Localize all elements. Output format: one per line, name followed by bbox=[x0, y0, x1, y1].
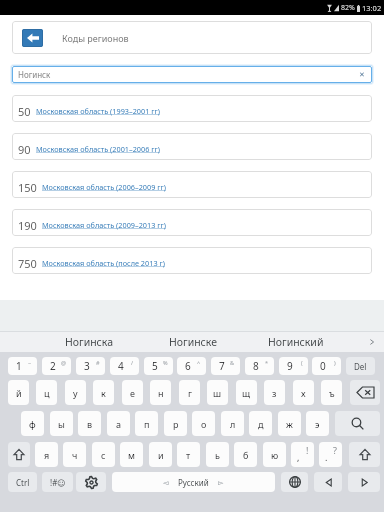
button[interactable]: Search bbox=[335, 411, 380, 436]
button[interactable]: 2 bbox=[42, 357, 71, 375]
button[interactable]: р bbox=[164, 411, 187, 436]
button[interactable]: Назад bbox=[22, 29, 43, 47]
button[interactable]: л bbox=[221, 411, 244, 436]
button[interactable]: в bbox=[78, 411, 101, 436]
button[interactable]: ъ bbox=[321, 380, 342, 405]
button[interactable]: Ногинске bbox=[141, 332, 245, 352]
staticText: б bbox=[243, 449, 249, 461]
button[interactable]: г bbox=[179, 380, 200, 405]
button[interactable]: 8 bbox=[245, 357, 274, 375]
staticText: , bbox=[297, 451, 300, 463]
staticText: ✕ bbox=[359, 71, 365, 79]
button[interactable]: Settings bbox=[76, 472, 106, 492]
button[interactable]: а bbox=[107, 411, 130, 436]
button[interactable]: 150 bbox=[12, 171, 372, 198]
button[interactable]: у bbox=[65, 380, 86, 405]
other: Settings bbox=[85, 476, 98, 489]
staticText: с bbox=[101, 449, 106, 461]
button[interactable]: Backspace bbox=[350, 380, 380, 405]
button[interactable]: д bbox=[249, 411, 272, 436]
button[interactable]: Ctrl bbox=[8, 472, 37, 492]
button[interactable]: , bbox=[291, 442, 314, 467]
button[interactable]: 7 bbox=[211, 357, 240, 375]
button[interactable]: 4 bbox=[110, 357, 139, 375]
button[interactable]: н bbox=[150, 380, 171, 405]
button[interactable]: й bbox=[8, 380, 29, 405]
button[interactable]: ь bbox=[206, 442, 229, 467]
staticText: Московская область (2009–2013 гг) bbox=[42, 220, 166, 230]
button[interactable]: Ногинск bbox=[12, 66, 372, 83]
button[interactable]: Влево bbox=[314, 472, 342, 492]
staticText: ъ bbox=[329, 387, 335, 399]
button[interactable]: к bbox=[93, 380, 114, 405]
staticText: ф bbox=[29, 418, 36, 430]
button[interactable]: Shift bbox=[8, 442, 30, 467]
staticText: 8 bbox=[253, 359, 259, 373]
button[interactable]: 190 bbox=[12, 209, 372, 236]
button[interactable]: я bbox=[35, 442, 58, 467]
button[interactable]: т bbox=[177, 442, 200, 467]
button[interactable]: ц bbox=[36, 380, 57, 405]
button[interactable]: ч bbox=[63, 442, 86, 467]
staticText: ю bbox=[271, 449, 279, 461]
staticText: Московская область (после 2013 г) bbox=[42, 258, 165, 268]
button[interactable]: б bbox=[234, 442, 257, 467]
button[interactable]: 90 bbox=[12, 133, 372, 160]
staticText: & bbox=[230, 359, 235, 366]
button[interactable]: ю bbox=[263, 442, 286, 467]
button[interactable]: с bbox=[92, 442, 115, 467]
button[interactable]: 6 bbox=[177, 357, 206, 375]
button[interactable]: Сменить язык bbox=[281, 472, 308, 492]
other: Backspace bbox=[357, 387, 374, 398]
button[interactable]: ы bbox=[50, 411, 73, 436]
button[interactable]: е bbox=[122, 380, 143, 405]
staticText: 190 bbox=[18, 218, 37, 233]
other: Вправо bbox=[360, 478, 369, 487]
button[interactable]: м bbox=[120, 442, 143, 467]
button[interactable]: 5 bbox=[144, 357, 173, 375]
button[interactable]: х bbox=[293, 380, 314, 405]
button[interactable]: Больше подсказок bbox=[360, 332, 384, 352]
staticText: # bbox=[96, 359, 100, 366]
button[interactable]: Ногинский bbox=[244, 332, 348, 352]
button[interactable]: Shift bbox=[349, 442, 380, 467]
button[interactable]: о bbox=[192, 411, 215, 436]
button[interactable]: Вправо bbox=[348, 472, 380, 492]
staticText: ы bbox=[58, 418, 65, 430]
staticText: т bbox=[186, 449, 191, 461]
staticText: в bbox=[87, 418, 93, 430]
button[interactable]: 3 bbox=[76, 357, 105, 375]
button[interactable]: ф bbox=[21, 411, 44, 436]
staticText: 50 bbox=[18, 104, 31, 119]
staticText: 0 bbox=[320, 359, 326, 373]
button[interactable]: ж bbox=[278, 411, 301, 436]
button[interactable]: п bbox=[135, 411, 158, 436]
staticText: ! bbox=[306, 444, 309, 456]
button[interactable]: 50 bbox=[12, 95, 372, 122]
other: Search bbox=[351, 417, 364, 430]
staticText: % bbox=[163, 359, 168, 366]
button[interactable]: и bbox=[149, 442, 172, 467]
button[interactable]: з bbox=[264, 380, 285, 405]
staticText: о bbox=[201, 418, 207, 430]
other: Shift bbox=[360, 449, 370, 460]
staticText: 5 bbox=[152, 359, 158, 373]
button[interactable]: 750 bbox=[12, 247, 372, 274]
button[interactable]: !#☺ bbox=[42, 472, 73, 492]
staticText: Московская область (2006–2009 гг) bbox=[42, 182, 166, 192]
button[interactable]: Del bbox=[346, 357, 375, 375]
button[interactable]: 9 bbox=[279, 357, 308, 375]
staticText: 7 bbox=[219, 359, 225, 373]
button[interactable]: ш bbox=[207, 380, 228, 405]
button[interactable]: . bbox=[319, 442, 342, 467]
staticText: а bbox=[116, 418, 122, 430]
button[interactable]: 0 bbox=[312, 357, 341, 375]
button[interactable]: Ногинска bbox=[37, 332, 141, 352]
staticText: 1 bbox=[16, 359, 22, 373]
staticText: 9 bbox=[287, 359, 293, 373]
staticText: ▻ bbox=[218, 479, 224, 487]
button[interactable]: 1 bbox=[8, 357, 37, 375]
button[interactable]: ◅ bbox=[112, 472, 275, 492]
button[interactable]: щ bbox=[236, 380, 257, 405]
button[interactable]: э bbox=[306, 411, 329, 436]
